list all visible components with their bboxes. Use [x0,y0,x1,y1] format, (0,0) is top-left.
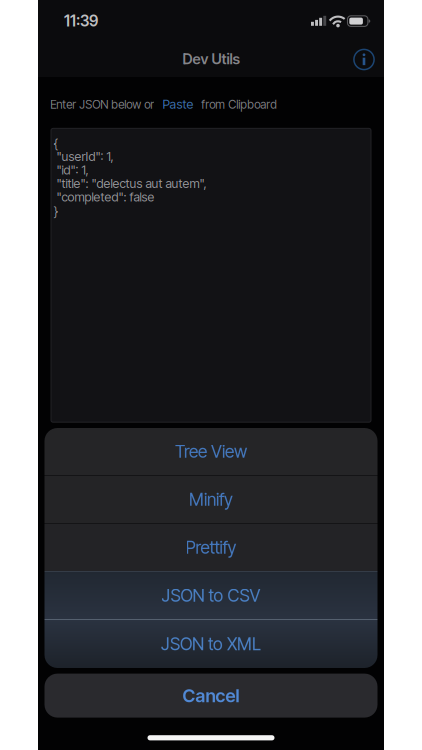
staticText: Tree View [175,441,247,462]
button[interactable]: Prettify [44,524,377,571]
button[interactable]: Info [353,48,375,70]
staticText: Minify [189,489,233,510]
staticText: from Clipboard [201,97,277,112]
staticText: Cancel [182,685,239,706]
staticText: JSON to CSV [161,585,260,606]
staticText: 11:39 [64,12,98,30]
button[interactable]: JSON to XML [44,620,377,668]
staticText: Enter JSON below or [50,97,154,112]
button[interactable]: JSON to CSV [44,572,377,619]
button[interactable]: Minify [44,476,377,523]
staticText: { "userId": 1, "id": 1, "title": "delect… [53,135,206,218]
button[interactable]: Tree View [44,428,377,475]
staticText: Prettify [185,537,236,558]
staticText: Paste [162,96,193,112]
button[interactable]: Cancel [44,674,377,718]
staticText: JSON to XML [161,633,261,654]
button[interactable]: Paste [162,96,193,112]
staticText: Dev Utils [182,50,239,68]
